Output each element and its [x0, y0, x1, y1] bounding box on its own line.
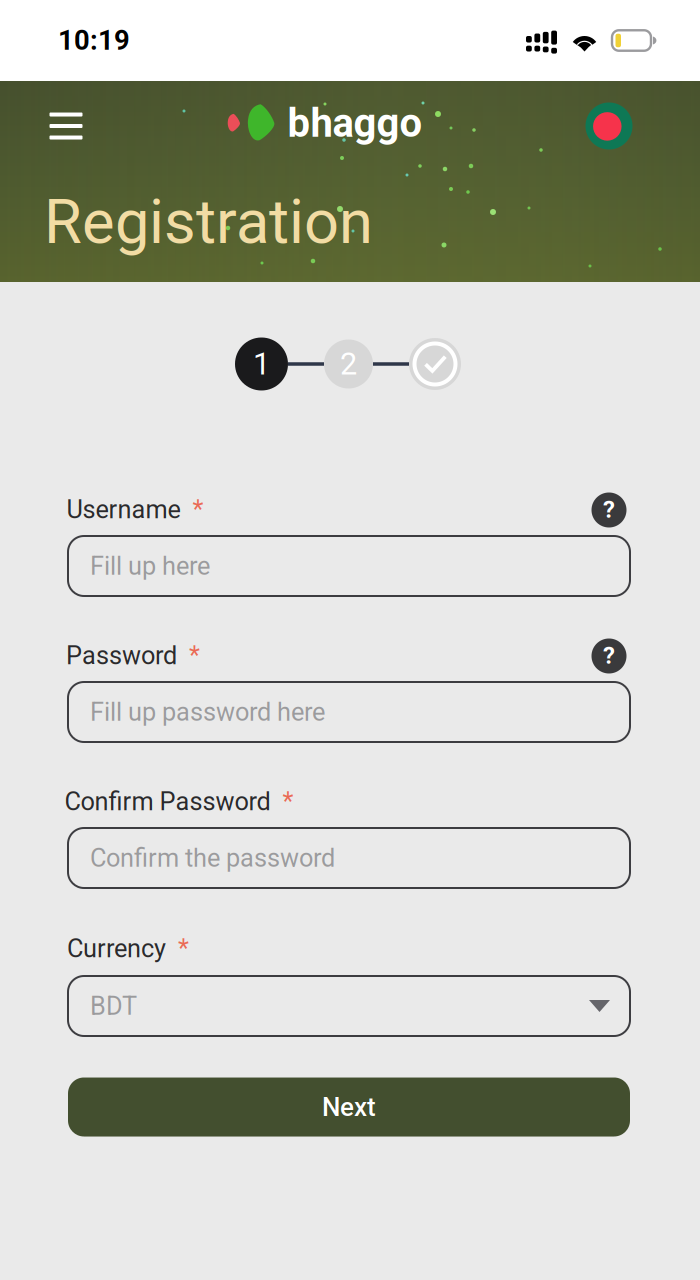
- staticText: Confirm the password: [90, 843, 335, 873]
- staticText: BDT: [90, 991, 137, 1021]
- staticText: 10:19: [58, 24, 130, 56]
- staticText: Registration: [44, 186, 373, 258]
- staticText: Fill up password here: [90, 697, 325, 727]
- staticText: Password: [66, 641, 177, 670]
- button[interactable]: Fill up password here: [68, 682, 630, 742]
- button[interactable]: Menu: [38, 100, 94, 152]
- staticText: *: [166, 934, 189, 963]
- staticText: Username: [66, 495, 180, 524]
- staticText: *: [180, 495, 203, 524]
- staticText: *: [177, 641, 200, 670]
- button[interactable]: Next: [68, 1077, 630, 1136]
- staticText: ?: [603, 641, 615, 669]
- staticText: Next: [322, 1092, 376, 1122]
- staticText: Confirm Password: [64, 787, 270, 816]
- staticText: *: [270, 787, 293, 816]
- button[interactable]: BDT: [68, 976, 630, 1036]
- button[interactable]: Confirm the password: [68, 828, 630, 888]
- staticText: ?: [603, 495, 615, 523]
- button[interactable]: Help with Password: [591, 638, 626, 673]
- staticText: Fill up here: [90, 551, 210, 581]
- button[interactable]: Help with Username: [591, 492, 626, 527]
- staticText: Currency: [67, 934, 166, 963]
- button[interactable]: Language: [585, 102, 632, 149]
- staticText: 2: [340, 346, 357, 382]
- button[interactable]: Fill up here: [68, 536, 630, 596]
- staticText: bhaggo: [288, 100, 423, 146]
- staticText: 1: [253, 346, 270, 382]
